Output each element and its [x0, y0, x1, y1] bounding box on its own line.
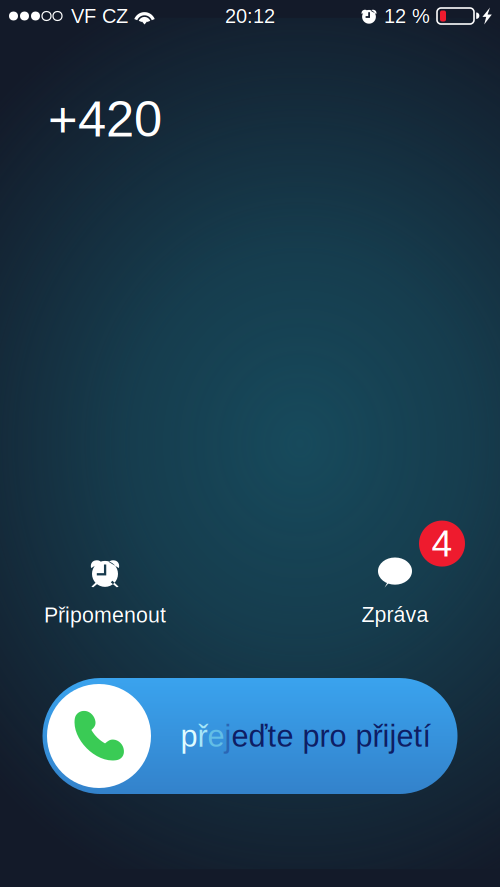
button[interactable]: 4 — [295, 558, 495, 626]
staticText: Připomenout — [44, 603, 166, 627]
staticText: p — [180, 719, 197, 753]
staticText: VF CZ — [71, 5, 128, 27]
staticText: ř — [197, 719, 207, 753]
button[interactable]: p — [42, 678, 457, 794]
staticText: j — [224, 719, 231, 753]
staticText: Zpráva — [361, 603, 428, 626]
staticText: 20:12 — [225, 5, 275, 27]
staticText: 12 % — [384, 5, 430, 27]
staticText: 4 — [431, 523, 452, 564]
button[interactable]: Připomenout — [5, 558, 205, 626]
staticText: +420 — [48, 91, 162, 147]
staticText: e — [207, 719, 224, 753]
staticText: eďte pro přijetí — [231, 719, 431, 753]
